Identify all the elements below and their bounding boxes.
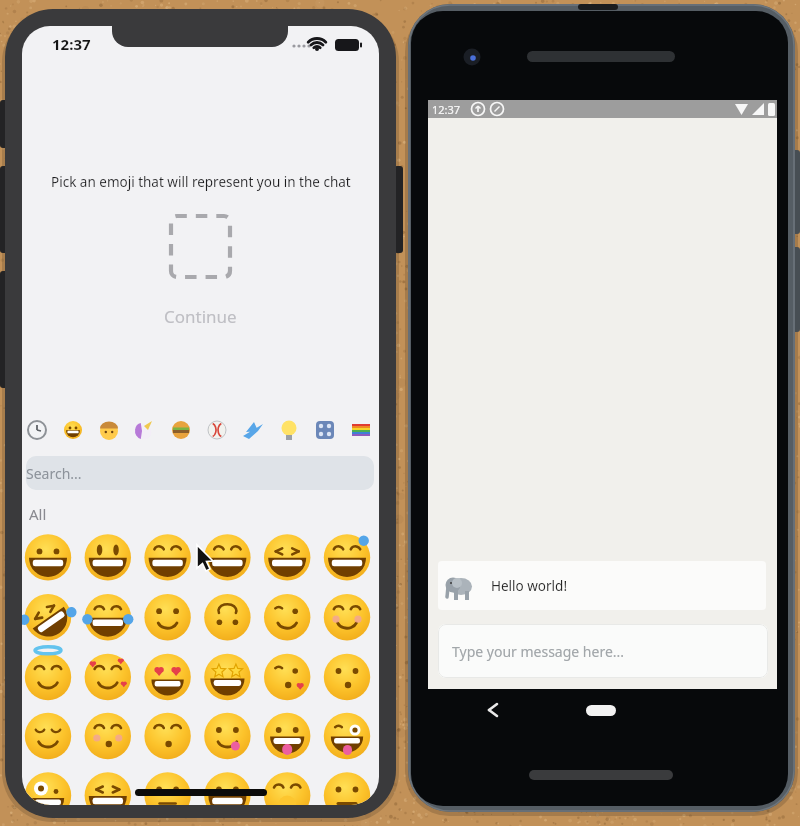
button[interactable] [25, 594, 71, 640]
button[interactable] [324, 534, 370, 580]
button[interactable] [25, 774, 71, 820]
button[interactable] [314, 419, 336, 441]
button[interactable] [264, 534, 310, 580]
staticText: Pick an emoji that will represent you in… [51, 173, 351, 191]
button[interactable] [204, 534, 250, 580]
button[interactable]: Continue [140, 303, 260, 329]
button[interactable] [26, 419, 48, 441]
button[interactable] [85, 534, 131, 580]
button[interactable] [145, 534, 191, 580]
button[interactable]: Search... [26, 456, 374, 490]
staticText: 12:37 [52, 34, 91, 54]
button[interactable] [242, 419, 264, 441]
button[interactable] [480, 698, 508, 726]
staticText: 12:37 [432, 102, 461, 117]
button[interactable] [134, 419, 156, 441]
button[interactable] [264, 774, 310, 820]
staticText: All [29, 504, 47, 524]
button[interactable] [145, 714, 191, 760]
button[interactable] [204, 594, 250, 640]
button[interactable] [98, 419, 120, 441]
button[interactable] [264, 714, 310, 760]
staticText: Type your message here... [452, 642, 625, 661]
button[interactable] [204, 714, 250, 760]
staticText: Search... [26, 464, 82, 483]
button[interactable] [85, 714, 131, 760]
button[interactable] [324, 714, 370, 760]
button[interactable] [350, 419, 372, 441]
button[interactable]: Hello world! [438, 561, 766, 610]
button[interactable] [324, 774, 370, 820]
button[interactable] [324, 594, 370, 640]
button[interactable] [85, 654, 131, 700]
button[interactable] [206, 419, 228, 441]
button[interactable] [278, 419, 300, 441]
button[interactable] [145, 774, 191, 820]
button[interactable] [25, 714, 71, 760]
button[interactable] [204, 654, 250, 700]
button[interactable] [264, 594, 310, 640]
staticText: Hello world! [491, 577, 568, 595]
button[interactable] [62, 419, 84, 441]
button[interactable] [145, 654, 191, 700]
button[interactable] [170, 419, 192, 441]
button[interactable] [204, 774, 250, 820]
staticText: Continue [164, 305, 237, 328]
button[interactable] [145, 594, 191, 640]
button[interactable] [85, 594, 131, 640]
button[interactable] [324, 654, 370, 700]
button[interactable] [85, 774, 131, 820]
button[interactable] [25, 654, 71, 700]
button[interactable] [264, 654, 310, 700]
button[interactable]: Type your message here... [438, 624, 768, 678]
button[interactable] [584, 700, 618, 720]
button[interactable] [25, 534, 71, 580]
